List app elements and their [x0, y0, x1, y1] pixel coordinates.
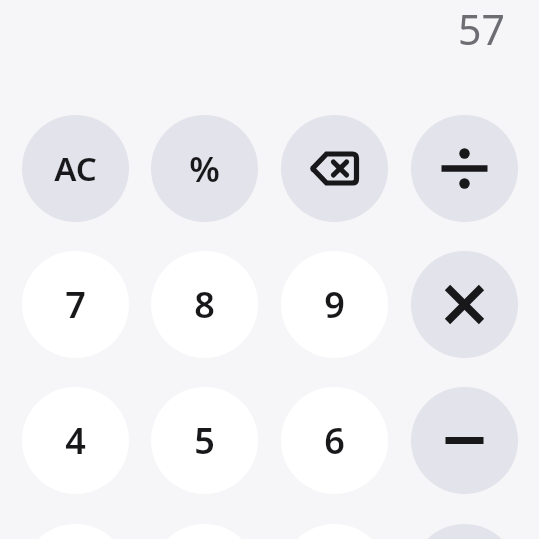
button[interactable]: 8 — [151, 251, 258, 358]
button[interactable]: Backspace — [281, 115, 388, 222]
staticText: 7 — [65, 280, 86, 329]
button[interactable]: Add — [411, 524, 518, 539]
staticText: AC — [54, 146, 97, 191]
button[interactable]: Divide — [411, 115, 518, 222]
button[interactable]: 1 — [22, 524, 129, 539]
button[interactable]: 3 — [281, 524, 388, 539]
staticText: 8 — [194, 280, 215, 329]
staticText: 9 — [324, 280, 345, 329]
button[interactable]: 6 — [281, 387, 388, 494]
staticText: 6 — [324, 416, 345, 465]
staticText: % — [189, 145, 220, 193]
button[interactable]: 7 — [22, 251, 129, 358]
staticText: 4 — [65, 416, 86, 465]
button[interactable]: AC — [22, 115, 129, 222]
button[interactable]: 2 — [151, 524, 258, 539]
button[interactable]: 4 — [22, 387, 129, 494]
button[interactable]: Subtract — [411, 387, 518, 494]
staticText: 5 — [194, 416, 215, 465]
button[interactable]: Multiply — [411, 251, 518, 358]
button[interactable]: 9 — [281, 251, 388, 358]
staticText: 57 — [458, 1, 505, 57]
button[interactable]: 5 — [151, 387, 258, 494]
button[interactable]: % — [151, 115, 258, 222]
